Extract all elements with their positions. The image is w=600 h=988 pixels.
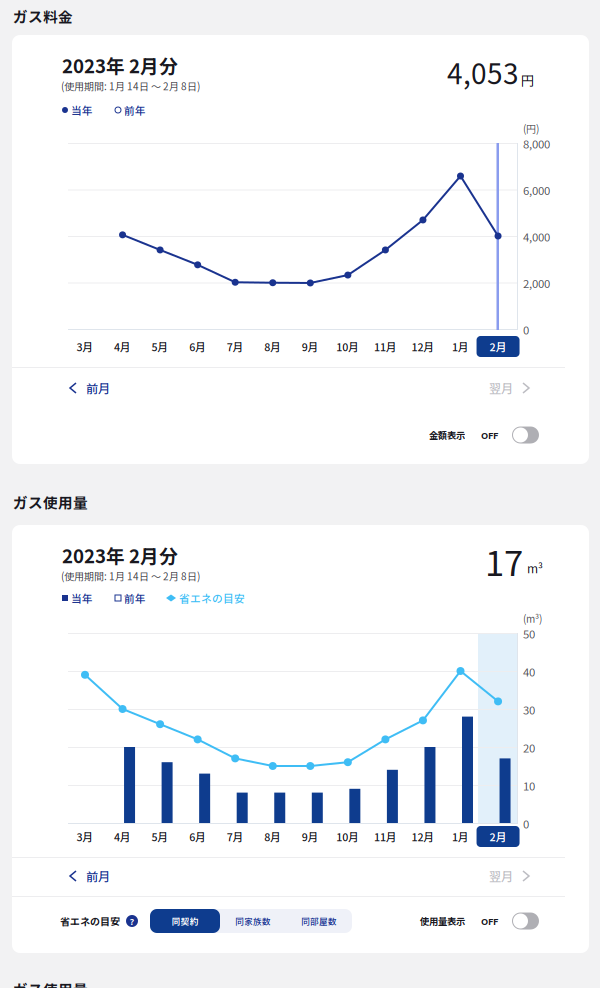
staticText: OFF	[481, 914, 498, 928]
staticText: 17	[485, 536, 523, 586]
button[interactable]: 使用量表示	[512, 912, 539, 929]
staticText: 50	[523, 625, 535, 642]
staticText: 前月	[86, 379, 110, 397]
staticText: 8,000	[523, 135, 550, 152]
staticText: 2023年 2月分	[62, 51, 178, 78]
staticText: 2月	[489, 339, 506, 354]
staticText: 7月	[227, 339, 244, 354]
staticText: 10月	[336, 829, 359, 844]
button[interactable]: 金額表示	[512, 426, 539, 443]
staticText: (使用期間: 1月 14日 〜 2月 8日)	[61, 79, 200, 93]
staticText: 7月	[227, 829, 244, 844]
staticText: 5月	[152, 829, 169, 844]
staticText: 翌月	[489, 867, 513, 885]
staticText: 当年	[71, 102, 93, 118]
button[interactable]: 前月	[70, 378, 180, 398]
staticText: 2023年 2月分	[62, 541, 178, 568]
staticText: 6月	[189, 339, 206, 354]
staticText: 11月	[374, 829, 397, 844]
staticText: ?	[129, 914, 134, 928]
staticText: 同部屋数	[301, 915, 337, 927]
staticText: 1月	[452, 829, 469, 844]
staticText: 8月	[264, 829, 281, 844]
staticText: 円	[521, 70, 534, 90]
staticText: OFF	[481, 428, 498, 442]
staticText: 11月	[374, 339, 397, 354]
button[interactable]: 翌月	[430, 866, 529, 886]
staticText: 40	[523, 663, 535, 680]
staticText: 1月	[452, 339, 469, 354]
staticText: 2,000	[523, 275, 550, 291]
staticText: (円)	[523, 121, 539, 136]
staticText: 省エネの目安	[179, 590, 245, 606]
staticText: 12月	[411, 339, 434, 354]
staticText: 0	[523, 321, 529, 338]
staticText: 4月	[114, 339, 131, 354]
staticText: 使用量表示	[420, 914, 465, 928]
staticText: (m³)	[523, 611, 542, 626]
button[interactable]: 同部屋数	[286, 909, 352, 933]
staticText: 省エネの目安	[60, 914, 120, 928]
staticText: 30	[523, 701, 535, 718]
staticText: 同家族数	[235, 915, 271, 927]
staticText: 当年	[71, 590, 93, 606]
staticText: 5月	[152, 339, 169, 354]
staticText: 3月	[76, 829, 93, 844]
staticText: 前月	[86, 867, 110, 885]
button[interactable]: 省エネの目安とは	[125, 914, 139, 928]
staticText: (使用期間: 1月 14日 〜 2月 8日)	[61, 569, 200, 583]
staticText: 前年	[124, 590, 146, 606]
button[interactable]: 翌月	[430, 378, 529, 398]
staticText: 4月	[114, 829, 131, 844]
staticText: 12月	[411, 829, 434, 844]
staticText: 6,000	[523, 182, 550, 198]
staticText: 前年	[124, 102, 146, 118]
staticText: 3月	[76, 339, 93, 354]
staticText: ガス使用量	[13, 978, 88, 988]
staticText: 10	[523, 777, 535, 794]
button[interactable]: 同契約	[150, 909, 220, 933]
staticText: 4,000	[523, 228, 550, 245]
staticText: 同契約	[171, 915, 198, 927]
staticText: 4,053	[447, 52, 519, 92]
staticText: 9月	[302, 339, 319, 354]
staticText: ガス料金	[13, 5, 73, 27]
staticText: 20	[523, 739, 535, 756]
staticText: m³	[527, 559, 543, 577]
staticText: 8月	[264, 339, 281, 354]
staticText: 翌月	[489, 379, 513, 397]
staticText: 2月	[489, 829, 506, 844]
button[interactable]: 同家族数	[220, 909, 286, 933]
staticText: 9月	[302, 829, 319, 844]
staticText: ガス使用量	[13, 491, 88, 513]
staticText: 金額表示	[429, 428, 465, 442]
staticText: 0	[523, 815, 529, 832]
staticText: 6月	[189, 829, 206, 844]
button[interactable]: 前月	[70, 866, 180, 886]
staticText: 10月	[336, 339, 359, 354]
